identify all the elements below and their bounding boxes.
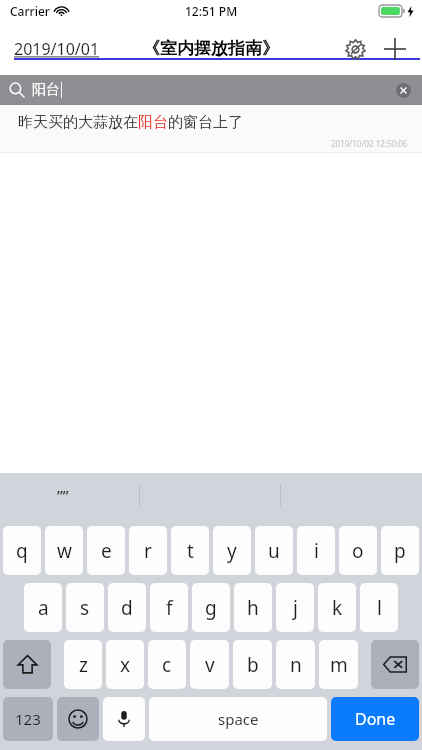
button[interactable]: Dictation	[103, 697, 145, 741]
button[interactable]: Add	[378, 32, 412, 66]
button[interactable]: p	[381, 526, 419, 575]
button[interactable]: q	[3, 526, 41, 575]
button[interactable]: o	[339, 526, 377, 575]
staticText: u	[268, 538, 280, 564]
staticText: 123	[15, 709, 41, 729]
staticText: Carrier	[10, 3, 50, 19]
button[interactable]: Settings	[338, 32, 372, 66]
button[interactable]: i	[297, 526, 335, 575]
staticText: 2019/10/01	[14, 38, 100, 60]
button[interactable]: Shift	[3, 640, 51, 689]
staticText: 昨天买的大蒜放在阳台的窗台上了	[18, 113, 243, 132]
button[interactable]: k	[318, 583, 356, 632]
staticText: w	[57, 538, 72, 564]
staticText: f	[166, 595, 173, 621]
staticText: k	[332, 595, 343, 621]
button[interactable]: s	[66, 583, 104, 632]
button[interactable]: x	[106, 640, 144, 689]
button[interactable]: j	[276, 583, 314, 632]
button[interactable]: y	[213, 526, 251, 575]
staticText: j	[293, 595, 298, 621]
button[interactable]: g	[192, 583, 230, 632]
staticText: d	[121, 595, 133, 621]
button[interactable]: f	[150, 583, 188, 632]
button[interactable]: c	[148, 640, 186, 689]
staticText: z	[79, 652, 88, 678]
button[interactable]: d	[108, 583, 146, 632]
button[interactable]: Clear search	[392, 79, 414, 101]
staticText: 2019/10/02 12:50:06	[331, 138, 408, 149]
button[interactable]: h	[234, 583, 272, 632]
staticText: x	[120, 652, 131, 678]
button[interactable]: r	[129, 526, 167, 575]
staticText: s	[80, 595, 90, 621]
button[interactable]: e	[87, 526, 125, 575]
staticText: 《室内摆放指南》	[143, 38, 279, 59]
button[interactable]: 123	[3, 697, 53, 741]
button[interactable]: 2019/10/01	[12, 34, 422, 64]
staticText: b	[247, 652, 259, 678]
button[interactable]: l	[360, 583, 398, 632]
staticText: o	[352, 538, 364, 564]
staticText: i	[314, 538, 319, 564]
button[interactable]: Emoji	[57, 697, 99, 741]
button[interactable]: space	[149, 697, 327, 741]
staticText: 阳台	[32, 81, 60, 99]
staticText: ””	[57, 485, 69, 505]
button[interactable]: w	[45, 526, 83, 575]
staticText: r	[144, 538, 152, 564]
staticText: e	[101, 538, 112, 564]
staticText: q	[16, 538, 28, 564]
staticText: m	[330, 652, 348, 678]
button[interactable]: u	[255, 526, 293, 575]
button[interactable]: a	[24, 583, 62, 632]
staticText: 12:51 PM	[185, 3, 238, 19]
button[interactable]: Done	[331, 697, 419, 741]
button[interactable]: t	[171, 526, 209, 575]
staticText: h	[247, 595, 259, 621]
staticText: t	[187, 538, 194, 564]
staticText: l	[377, 595, 382, 621]
button[interactable]: v	[190, 640, 229, 689]
button[interactable]: m	[319, 640, 358, 689]
staticText: p	[394, 538, 406, 564]
button[interactable]: z	[64, 640, 102, 689]
staticText: g	[205, 595, 217, 621]
button[interactable]: n	[276, 640, 315, 689]
staticText: c	[162, 652, 172, 678]
staticText: space	[218, 709, 259, 729]
staticText: a	[38, 595, 49, 621]
staticText: Done	[355, 708, 396, 730]
button[interactable]: b	[233, 640, 272, 689]
button[interactable]: 阳台	[0, 75, 422, 105]
staticText: v	[205, 652, 215, 678]
button[interactable]: 昨天买的大蒜放在阳台的窗台上了	[0, 105, 422, 153]
button[interactable]: Backspace	[371, 640, 419, 689]
staticText: y	[227, 538, 237, 564]
staticText: n	[290, 652, 302, 678]
